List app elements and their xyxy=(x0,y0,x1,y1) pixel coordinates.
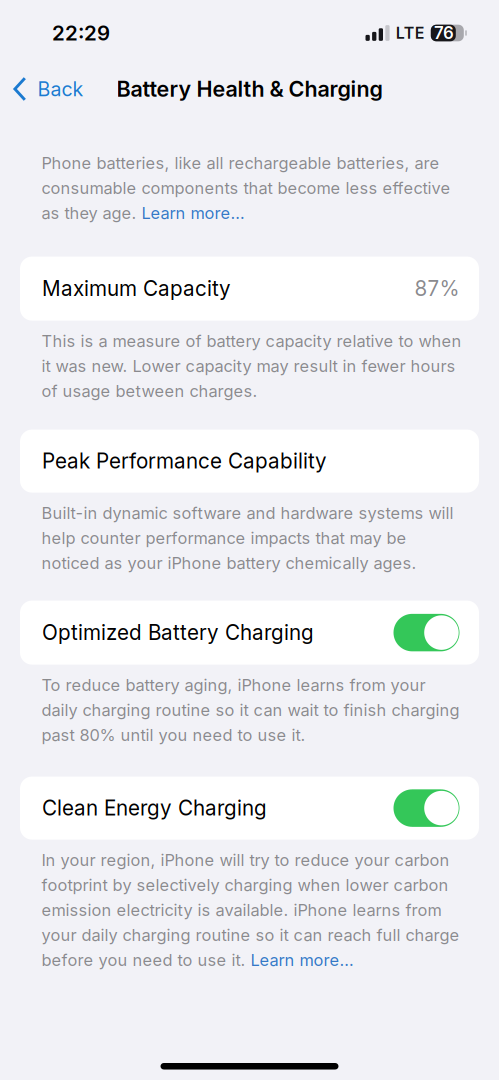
staticText: This is a measure of battery capacity re… xyxy=(41,331,461,351)
staticText: Phone batteries, like all rechargeable b… xyxy=(41,153,439,173)
staticText: Battery Health & Charging xyxy=(116,76,382,102)
staticText: before you need to use it. xyxy=(41,950,250,970)
staticText: Peak Performance Capability xyxy=(42,449,327,474)
staticText: 76 xyxy=(434,23,454,43)
staticText: of usage between charges. xyxy=(41,381,257,401)
staticText: your daily charging routine so it can re… xyxy=(41,925,459,945)
staticText: To reduce battery aging, iPhone learns f… xyxy=(41,675,425,695)
staticText: help counter performance impacts that ma… xyxy=(41,528,406,548)
button[interactable]: Optimized Battery Charging xyxy=(0,601,499,665)
staticText: Learn more… xyxy=(250,950,353,970)
staticText: 87% xyxy=(414,276,459,301)
staticText: Maximum Capacity xyxy=(42,276,231,301)
button[interactable]: Peak Performance Capability xyxy=(0,430,499,493)
staticText: footprint by selectively charging when l… xyxy=(41,875,448,895)
staticText: Optimized Battery Charging xyxy=(42,620,314,645)
staticText: Clean Energy Charging xyxy=(42,796,267,821)
staticText: consumable components that become less e… xyxy=(41,178,450,198)
button[interactable]: Clean Energy Charging xyxy=(0,777,499,840)
staticText: as they age. xyxy=(41,203,141,223)
staticText: Learn more… xyxy=(141,203,244,223)
staticText: 22:29 xyxy=(52,21,110,45)
staticText: emission electricity is available. iPhon… xyxy=(41,900,441,920)
button[interactable]: Back xyxy=(0,67,95,111)
staticText: daily charging routine so it can wait to… xyxy=(41,700,459,720)
staticText: it was new. Lower capacity may result in… xyxy=(41,356,455,376)
staticText: past 80% until you need to use it. xyxy=(41,725,305,745)
staticText: In your region, iPhone will try to reduc… xyxy=(41,850,449,870)
staticText: Built-in dynamic software and hardware s… xyxy=(41,503,453,523)
staticText: Back xyxy=(37,77,83,101)
button[interactable]: Maximum Capacity xyxy=(0,257,499,321)
staticText: LTE xyxy=(396,23,425,43)
staticText: noticed as your iPhone battery chemicall… xyxy=(41,553,416,573)
